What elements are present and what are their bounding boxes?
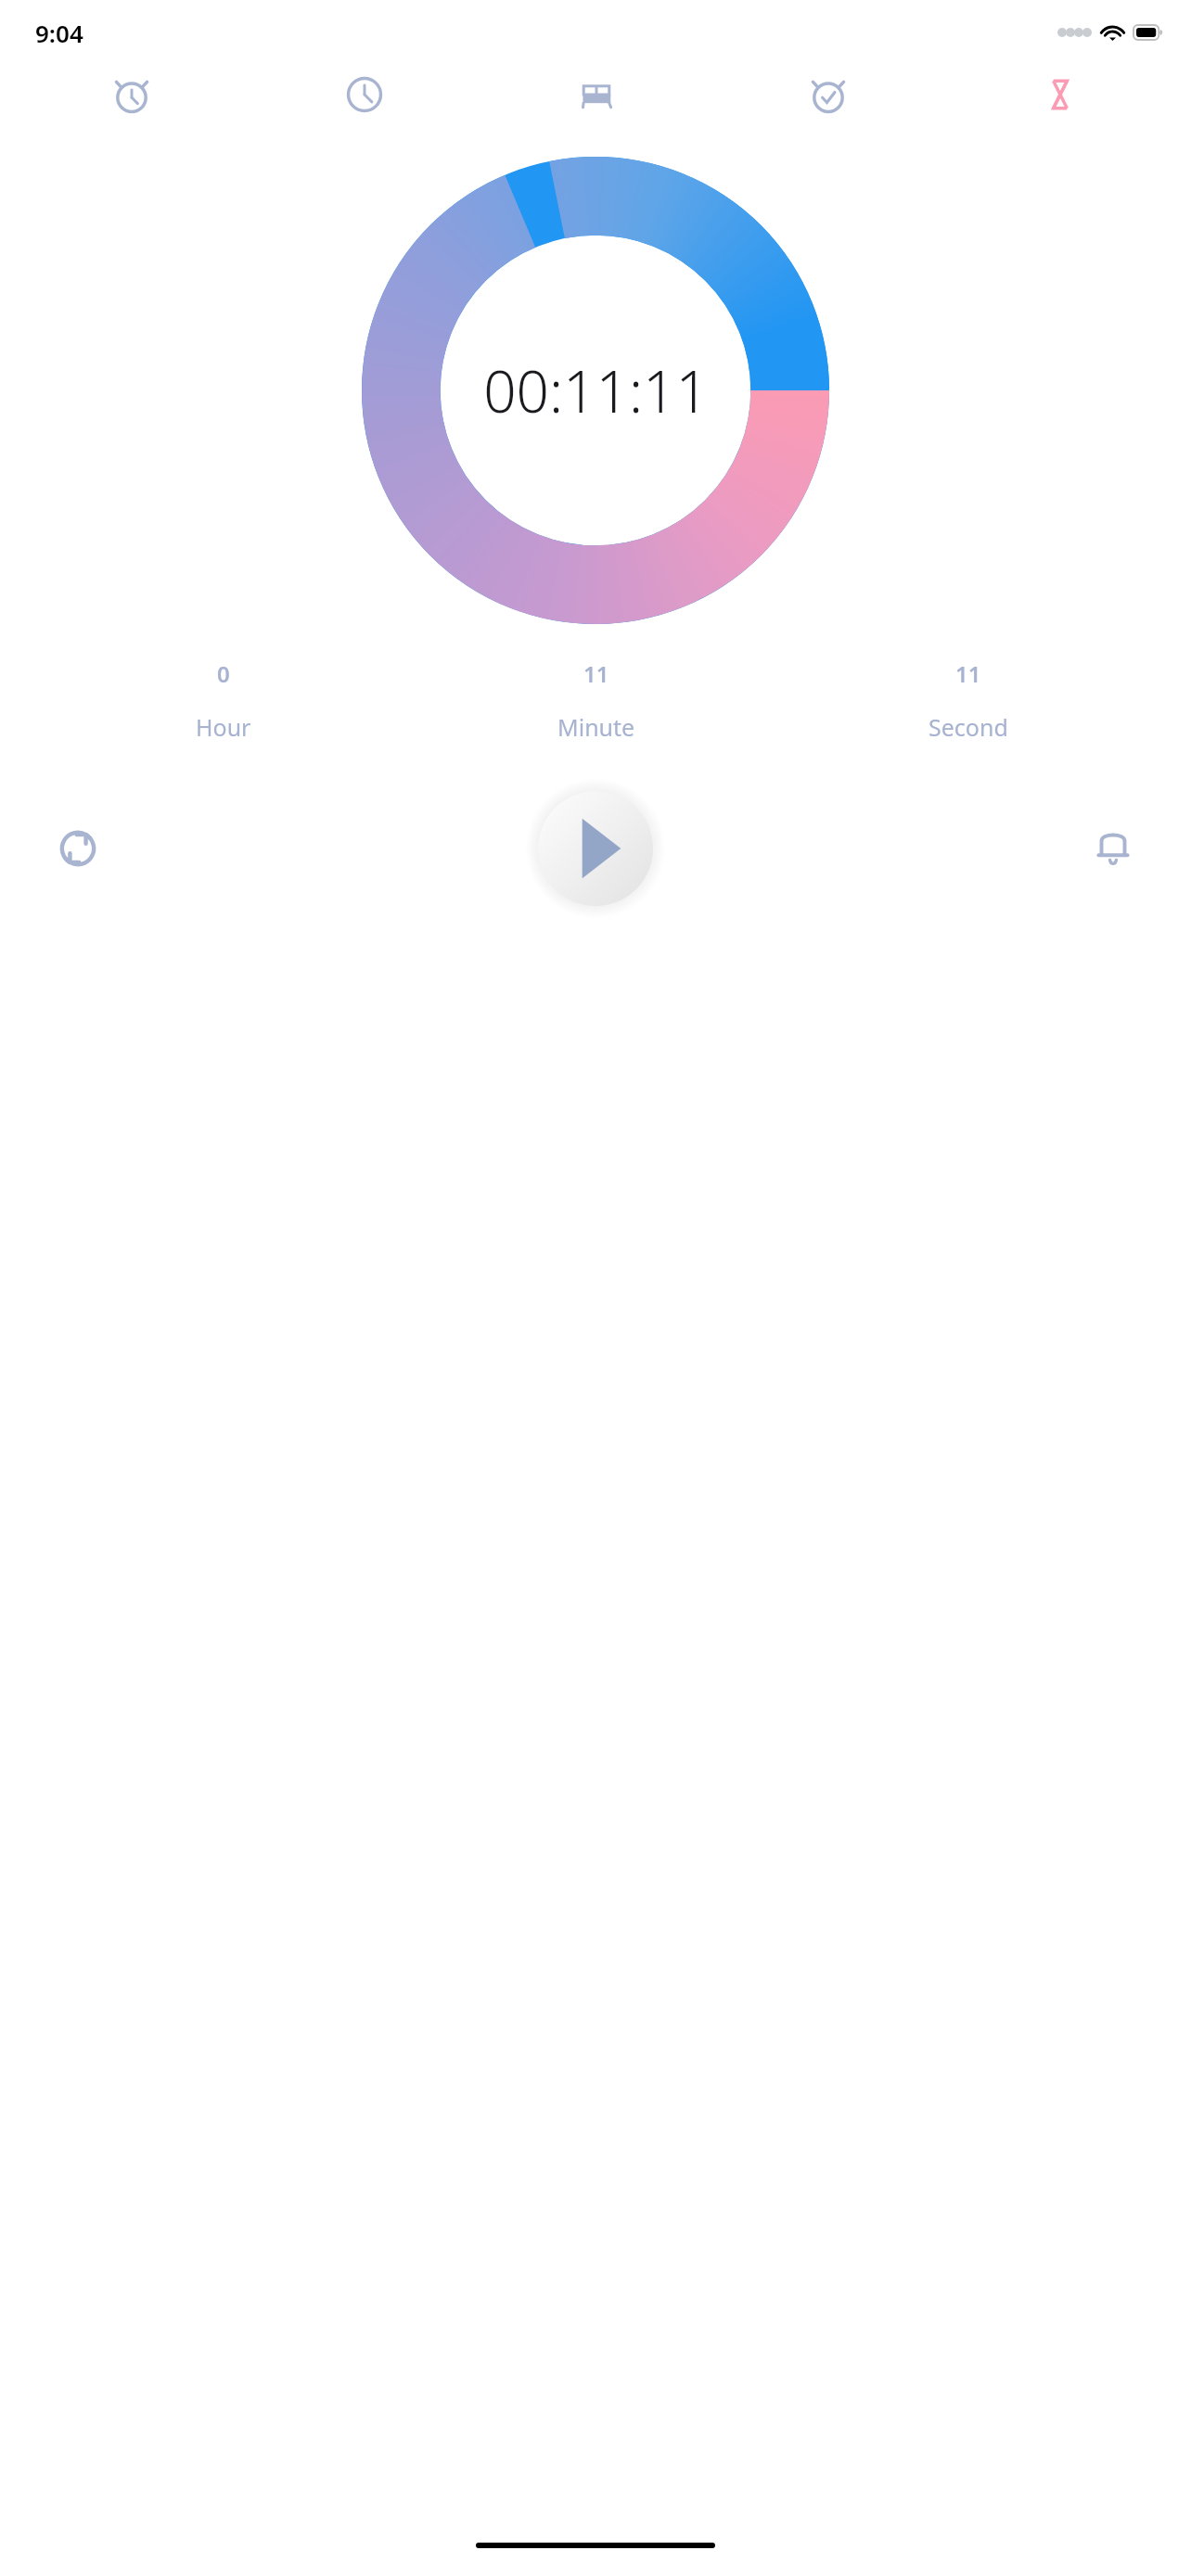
staticText: Hour — [196, 711, 251, 743]
button[interactable]: Start — [538, 791, 653, 906]
button[interactable]: World clock — [248, 59, 480, 130]
staticText: 0 — [217, 658, 230, 689]
button[interactable]: 0 — [37, 658, 410, 743]
staticText: 9:04 — [35, 17, 83, 49]
button[interactable]: 11 — [410, 658, 782, 743]
button[interactable]: Alarm — [15, 59, 248, 130]
button[interactable]: Bedtime — [480, 59, 712, 130]
staticText: 11 — [583, 658, 609, 689]
button[interactable]: Reset — [33, 804, 122, 893]
staticText: Second — [928, 711, 1008, 743]
staticText: 00:11:11 — [483, 351, 709, 429]
button[interactable]: Timer — [944, 59, 1176, 130]
staticText: 11 — [955, 658, 981, 689]
button[interactable]: 11 — [782, 658, 1154, 743]
staticText: Minute — [557, 711, 635, 743]
button[interactable]: Stopwatch — [712, 59, 944, 130]
button[interactable]: Alarm sound — [1069, 804, 1158, 893]
